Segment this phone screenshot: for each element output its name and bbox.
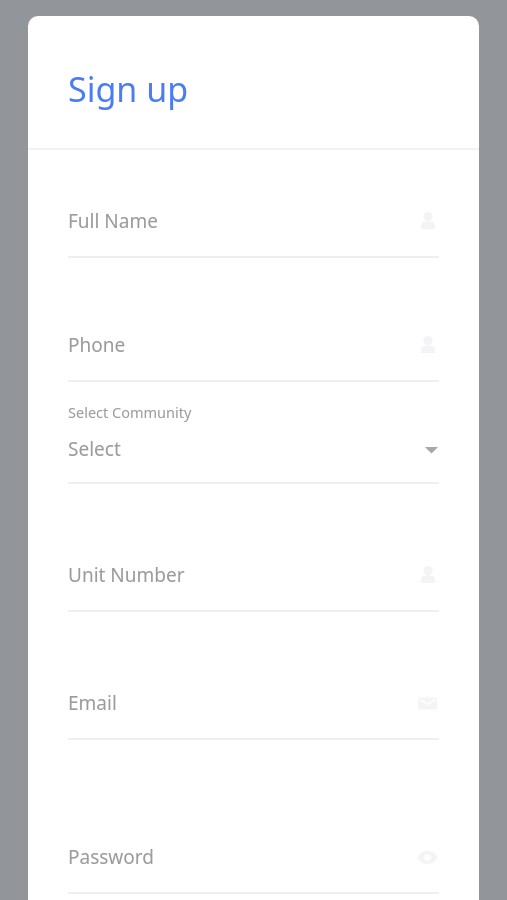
button[interactable]: Select [68, 436, 439, 462]
staticText: Sign up [68, 66, 189, 112]
staticText: Unit Number [68, 562, 417, 588]
staticText: Password [68, 844, 416, 870]
other: Phone [417, 334, 439, 356]
staticText: Full Name [68, 208, 417, 234]
button[interactable]: Full Name [68, 208, 439, 234]
button[interactable]: Phone [68, 332, 439, 358]
other: Full name [417, 210, 439, 232]
other: Unit number [417, 564, 439, 586]
staticText: Select Community [68, 402, 192, 422]
other: Show password [416, 849, 439, 866]
staticText: Select [68, 436, 424, 462]
button[interactable]: Unit Number [68, 562, 439, 588]
other: Open community list [424, 443, 439, 456]
staticText: Phone [68, 332, 417, 358]
staticText: Email [68, 690, 416, 716]
other: Email [416, 694, 439, 713]
button[interactable]: Email [68, 690, 439, 716]
button[interactable]: Password [68, 844, 439, 870]
